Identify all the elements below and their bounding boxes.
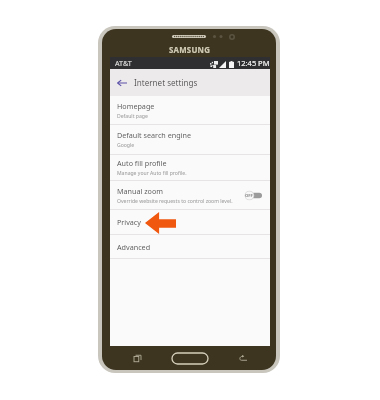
staticText: Internet settings: [134, 77, 198, 88]
button[interactable]: Manual zoom switch, off: [244, 190, 262, 201]
button[interactable]: Privacy: [110, 210, 270, 234]
button[interactable]: Navigate up: [110, 71, 134, 95]
staticText: Override website requests to control zoo…: [117, 198, 233, 205]
button[interactable]: Auto fill profile: [110, 155, 270, 180]
button[interactable]: Recent apps: [130, 351, 144, 365]
button[interactable]: Default search engine: [110, 125, 270, 154]
staticText: Homepage: [117, 101, 155, 111]
staticText: Auto fill profile: [117, 158, 167, 168]
button[interactable]: Manual zoom: [110, 181, 270, 209]
staticText: Advanced: [117, 242, 151, 252]
staticText: Privacy: [117, 217, 141, 227]
staticText: Google: [117, 142, 135, 149]
staticText: AT&T: [115, 58, 132, 68]
button[interactable]: Back: [236, 351, 250, 365]
button[interactable]: Home: [170, 351, 210, 365]
button[interactable]: Homepage: [110, 96, 270, 124]
staticText: Default search engine: [117, 130, 191, 140]
staticText: 12:45 PM: [237, 58, 270, 68]
button[interactable]: Advanced: [110, 235, 270, 258]
staticText: Manage your Auto fill profile.: [117, 170, 187, 177]
staticText: Default page: [117, 113, 148, 120]
staticText: SAMSUNG: [169, 45, 211, 53]
staticText: OFF: [245, 193, 253, 199]
staticText: Manual zoom: [117, 186, 163, 196]
